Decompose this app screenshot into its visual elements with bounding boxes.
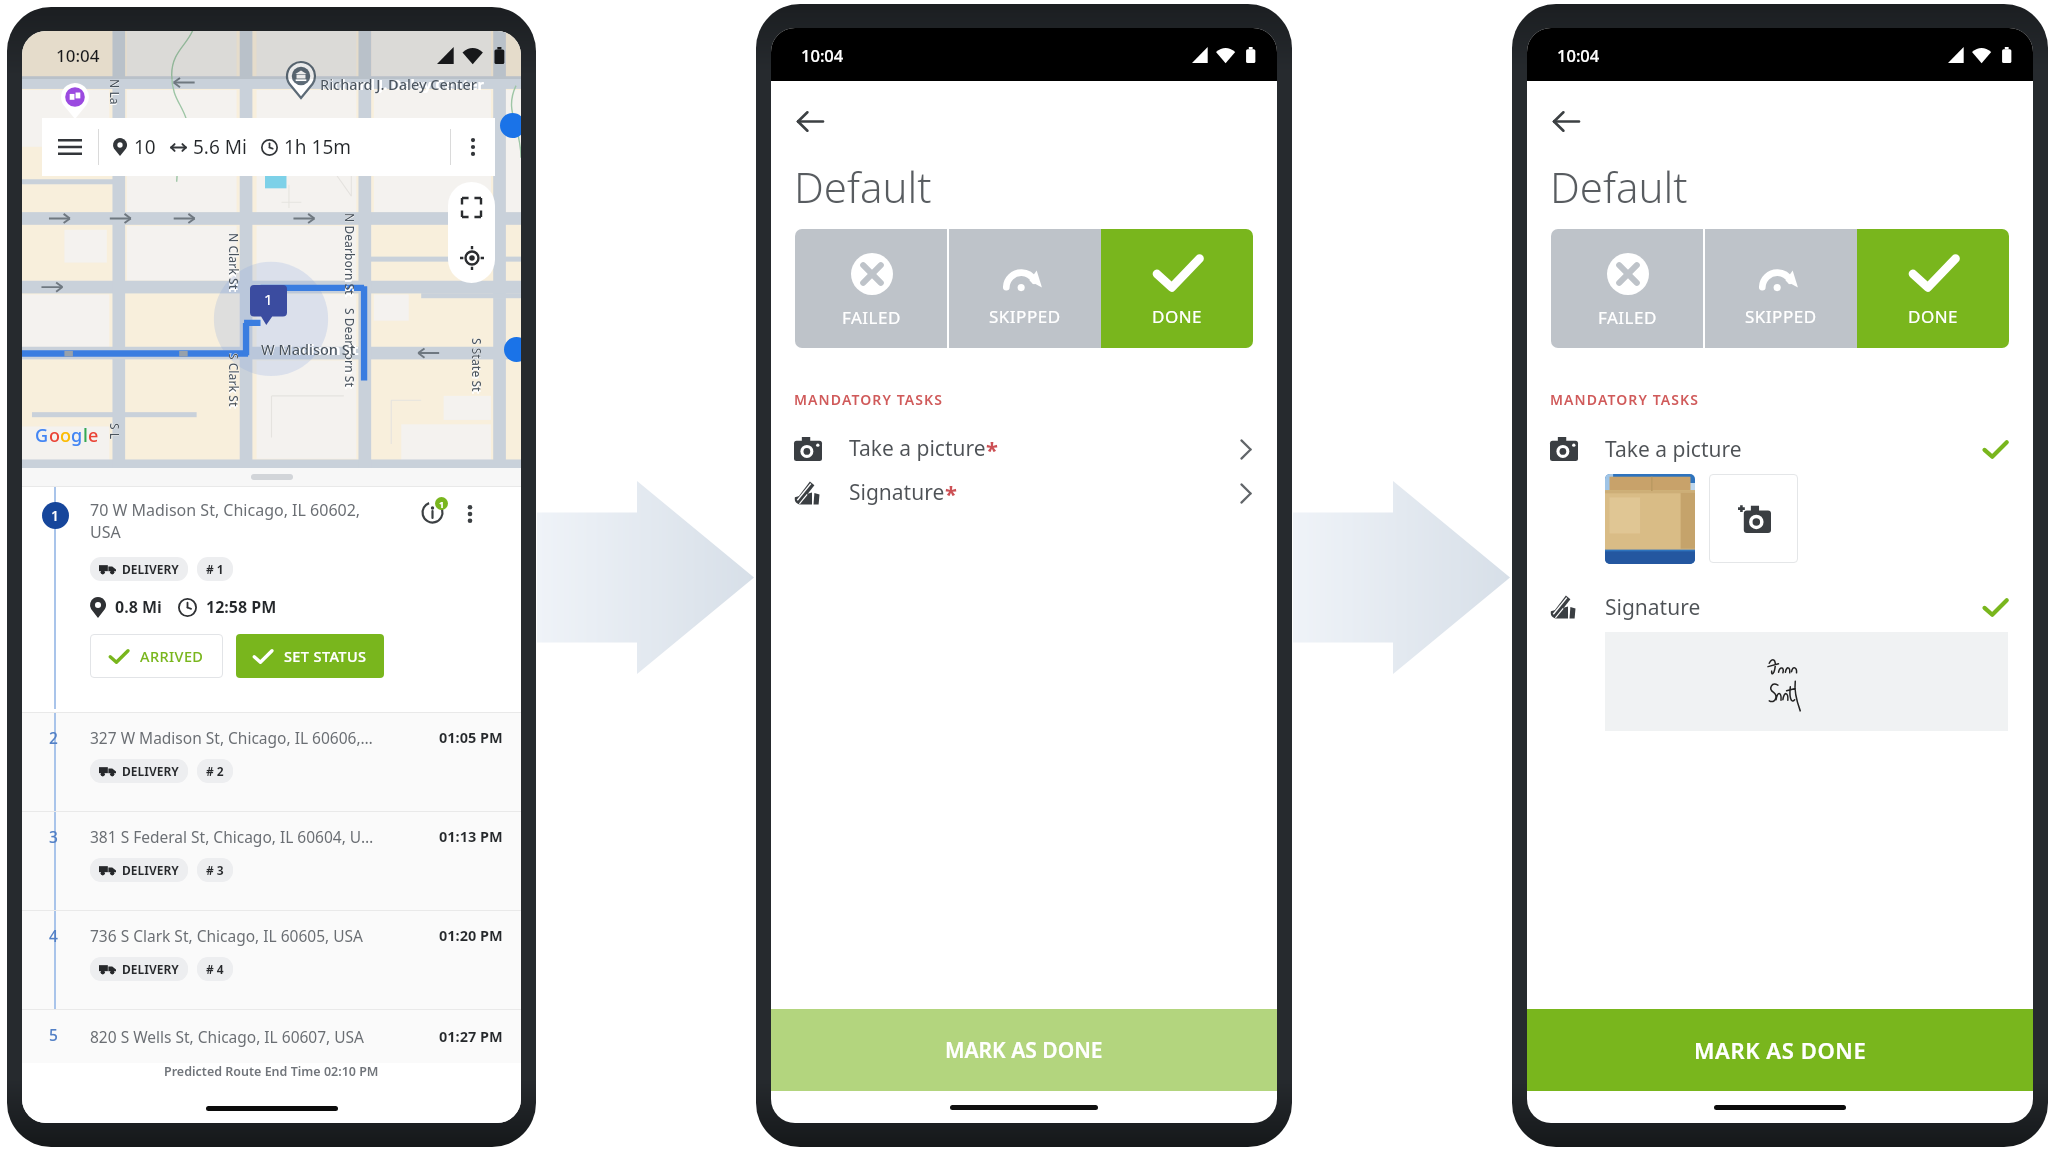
button[interactable]: Take a picture xyxy=(771,432,1277,466)
staticText: S L xyxy=(107,423,123,440)
staticText: S Clark St xyxy=(226,353,242,409)
staticText: 70 W Madison St, Chicago, IL 60602, USA xyxy=(90,499,378,543)
button[interactable]: SKIPPED xyxy=(949,229,1101,348)
staticText: MARK AS DONE xyxy=(945,1036,1103,1065)
staticText: DELIVERY xyxy=(122,763,179,779)
staticText: MANDATORY TASKS xyxy=(1550,390,1700,409)
button[interactable]: Menu xyxy=(42,118,98,176)
staticText: * xyxy=(945,478,957,508)
staticText: 01:27 PM xyxy=(439,1026,503,1046)
staticText: W Madison St xyxy=(261,339,359,359)
staticText: N Clark St xyxy=(226,233,242,290)
staticText: Signature xyxy=(1605,593,1701,622)
staticText: 1 xyxy=(264,289,273,309)
button[interactable]: SKIPPED xyxy=(1705,229,1857,348)
button[interactable]: More xyxy=(459,501,481,527)
button[interactable]: 327 W Madison St, Chicago, IL 60606,… xyxy=(22,713,521,811)
staticText: e xyxy=(88,423,99,448)
staticText: S Dearborn St xyxy=(342,308,358,388)
staticText: DELIVERY xyxy=(122,862,179,878)
button[interactable]: My location xyxy=(448,232,495,283)
staticText: Signature xyxy=(849,478,945,507)
button[interactable]: More options xyxy=(451,118,495,176)
staticText: Default xyxy=(1550,158,1688,215)
staticText: SKIPPED xyxy=(989,305,1061,328)
staticText: S State St xyxy=(469,338,485,395)
staticText: o xyxy=(60,423,71,448)
staticText: 10:04 xyxy=(56,44,100,67)
staticText: FAILED xyxy=(842,306,901,329)
staticText: 736 S Clark St, Chicago, IL 60605, USA xyxy=(90,925,363,946)
button[interactable]: FAILED xyxy=(1551,229,1703,348)
staticText: 01:20 PM xyxy=(439,925,503,945)
staticText: # 2 xyxy=(206,763,224,779)
staticText: 381 S Federal St, Chicago, IL 60604, U… xyxy=(90,826,374,847)
button[interactable]: 1 xyxy=(22,487,521,709)
staticText: * xyxy=(986,434,998,464)
staticText: 1 xyxy=(51,506,60,525)
staticText: 0.8 Mi xyxy=(115,596,162,618)
staticText: 01:13 PM xyxy=(439,826,503,846)
button[interactable]: FAILED xyxy=(795,229,947,348)
button[interactable]: Take a picture xyxy=(1527,432,2033,466)
staticText: g xyxy=(71,423,83,448)
staticText: 5 xyxy=(49,1024,58,1045)
button[interactable]: Info xyxy=(421,501,444,524)
button[interactable]: MARK AS DONE xyxy=(771,1009,1277,1091)
staticText: Take a picture xyxy=(1605,435,1742,464)
staticText: 2 xyxy=(49,727,58,748)
staticText: S Dearborn St xyxy=(342,308,358,390)
staticText: Richard J. Daley Center xyxy=(320,74,478,94)
button[interactable]: Signature xyxy=(1527,590,2033,624)
staticText: 1 xyxy=(439,498,445,510)
staticText: # 3 xyxy=(206,862,224,878)
button[interactable]: SET STATUS xyxy=(236,634,384,678)
staticText: Take a picture xyxy=(849,434,986,463)
staticText: N Dearborn St xyxy=(342,213,358,298)
staticText: S State St xyxy=(469,338,485,392)
staticText: 10:04 xyxy=(801,44,844,66)
staticText: 4 xyxy=(49,925,58,946)
button[interactable]: Signature xyxy=(771,476,1277,510)
staticText: FAILED xyxy=(1598,306,1657,329)
staticText: 3 xyxy=(49,826,58,847)
staticText: N La xyxy=(107,79,123,106)
staticText: 10 xyxy=(134,134,156,160)
staticText: 820 S Wells St, Chicago, IL 60607, USA xyxy=(90,1026,431,1047)
staticText: DELIVERY xyxy=(122,561,179,577)
button[interactable]: Back xyxy=(1548,103,1584,139)
staticText: ARRIVED xyxy=(140,646,204,666)
staticText: Richard J. Daley Center xyxy=(320,74,485,94)
staticText: S L xyxy=(107,423,123,440)
staticText: W Madison St xyxy=(261,339,356,359)
staticText: MARK AS DONE xyxy=(1694,1035,1867,1065)
staticText: 01:05 PM xyxy=(439,727,503,747)
staticText: DELIVERY xyxy=(122,961,179,977)
button[interactable]: ARRIVED xyxy=(90,634,223,678)
button[interactable]: 736 S Clark St, Chicago, IL 60605, USA xyxy=(22,911,521,1009)
button[interactable]: DONE xyxy=(1101,229,1253,348)
button[interactable]: Fit route xyxy=(448,182,495,232)
staticText: 10:04 xyxy=(1557,44,1600,66)
staticText: G xyxy=(35,423,49,448)
button[interactable]: Add photo xyxy=(1709,474,1798,563)
staticText: N Dearborn St xyxy=(342,213,358,295)
staticText: 5.6 Mi xyxy=(193,134,247,160)
staticText: DONE xyxy=(1908,305,1959,328)
staticText: Predicted Route End Time 02:10 PM xyxy=(164,1063,379,1080)
staticText: o xyxy=(49,423,60,448)
button[interactable]: Back xyxy=(792,103,828,139)
staticText: DONE xyxy=(1152,305,1203,328)
button[interactable]: MARK AS DONE xyxy=(1527,1009,2033,1091)
staticText: S Clark St xyxy=(226,353,242,407)
staticText: N La xyxy=(107,79,123,105)
button[interactable]: DONE xyxy=(1857,229,2009,348)
staticText: 1h 15m xyxy=(284,134,352,160)
staticText: MANDATORY TASKS xyxy=(794,390,944,409)
button[interactable]: 381 S Federal St, Chicago, IL 60604, U… xyxy=(22,812,521,910)
staticText: SKIPPED xyxy=(1745,305,1817,328)
staticText: # 4 xyxy=(206,961,224,977)
staticText: 12:58 PM xyxy=(206,596,277,618)
staticText: Default xyxy=(794,158,932,215)
button[interactable]: 820 S Wells St, Chicago, IL 60607, USA xyxy=(22,1010,521,1063)
